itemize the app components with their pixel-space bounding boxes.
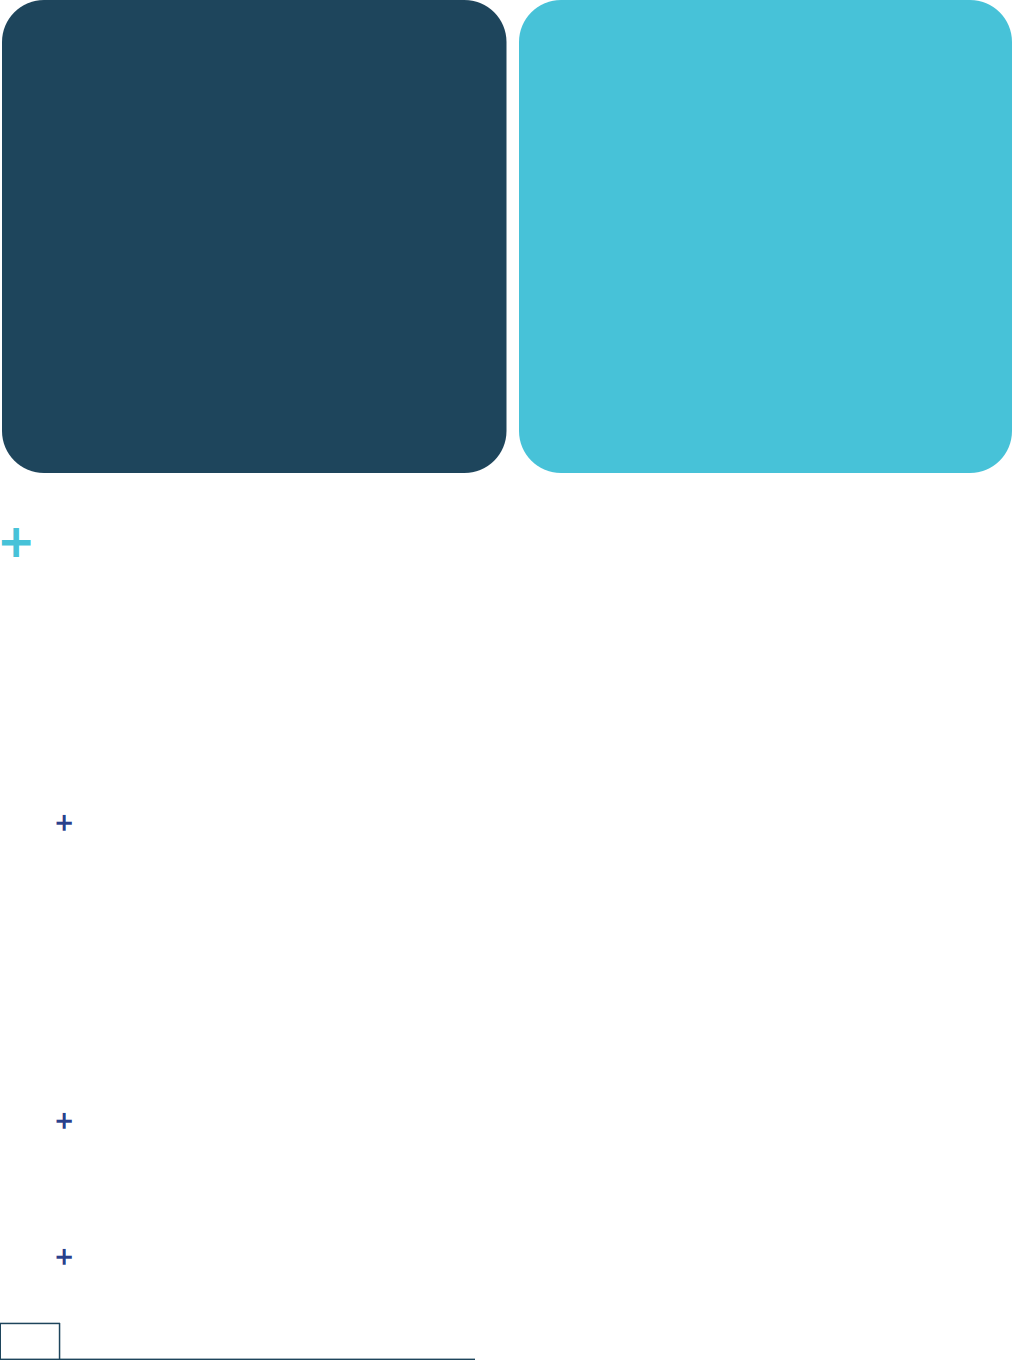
button[interactable]: Add — [55, 801, 73, 843]
button[interactable]: First tab — [0, 1323, 60, 1360]
staticText: + — [0, 501, 33, 581]
staticText: + — [55, 1099, 73, 1141]
button[interactable]: Add — [55, 1099, 73, 1141]
staticText: + — [55, 801, 73, 843]
staticText: + — [55, 1235, 73, 1277]
button[interactable]: Add item — [0, 501, 33, 581]
button[interactable]: Primary card — [2, 0, 506, 473]
button[interactable]: Secondary card — [519, 0, 1012, 473]
button[interactable]: Add — [55, 1235, 73, 1277]
